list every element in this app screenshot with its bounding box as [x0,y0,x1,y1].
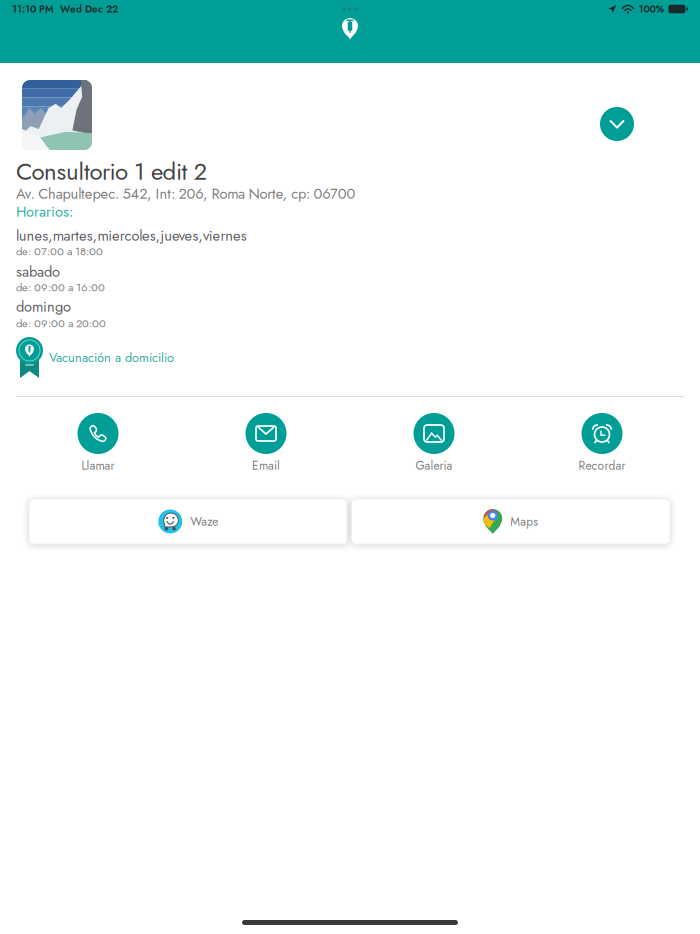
staticText: Consultorio 1 edit 2 [16,154,207,189]
button[interactable]: Waze [29,499,347,544]
button[interactable]: Recordar [518,408,686,479]
staticText: Maps [510,513,538,530]
staticText: Vacunación a domicilio [49,348,174,367]
button[interactable]: Llamar [14,408,182,479]
button[interactable]: Email [182,408,350,479]
staticText: Waze [190,513,218,530]
staticText: 11:10 PM [12,2,54,16]
staticText: de: 09:00 a 16:00 [16,279,105,295]
staticText: lunes,martes,miercoles,jueves,viernes [16,225,247,246]
button[interactable]: Collapse details [591,98,643,150]
staticText: domingo [16,296,71,317]
button[interactable]: Galeria [350,408,518,479]
staticText: Llamar [81,457,114,474]
staticText: Horarios: [16,201,73,222]
staticText: Email [252,457,280,474]
staticText: Galeria [415,457,452,474]
staticText: de: 09:00 a 20:00 [16,315,106,331]
staticText: Av. Chapultepec. 542, Int: 206, Roma Nor… [16,183,356,204]
staticText: Recordar [578,457,625,474]
staticText: de: 07:00 a 18:00 [16,243,103,259]
staticText: sabado [16,261,60,282]
staticText: 100% [638,2,664,16]
button[interactable]: Vacunación a domicilio [16,337,316,378]
staticText: Wed Dec 22 [60,2,118,16]
button[interactable]: Maps [351,499,670,544]
